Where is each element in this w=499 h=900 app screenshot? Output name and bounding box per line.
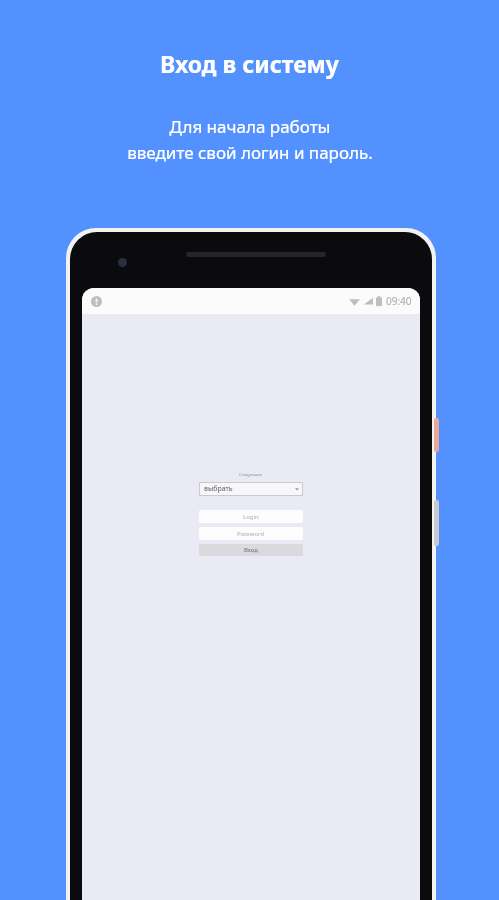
button[interactable]: Вход xyxy=(199,544,303,556)
button[interactable]: Password xyxy=(199,527,303,540)
button[interactable]: Login xyxy=(199,510,303,523)
staticText: Вход xyxy=(244,546,258,554)
other: Volume xyxy=(434,500,439,546)
staticText: Password xyxy=(237,530,265,538)
staticText: Login xyxy=(243,513,259,521)
staticText: Следующие xyxy=(239,472,263,477)
staticText: выбрать xyxy=(204,484,233,494)
staticText: 09:40 xyxy=(386,294,412,308)
staticText: Для начала работы введите свой логин и п… xyxy=(127,115,373,164)
other: Power xyxy=(434,418,439,452)
other: Info xyxy=(91,296,102,307)
button[interactable]: выбрать xyxy=(199,482,303,496)
staticText: Вход в систему xyxy=(160,48,339,79)
